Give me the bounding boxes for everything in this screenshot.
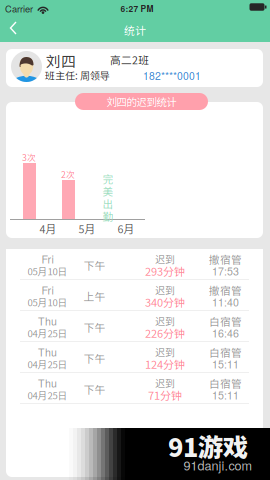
staticText: 6:27 PM bbox=[120, 2, 153, 14]
staticText: 15:11 bbox=[212, 387, 239, 403]
button[interactable]: Thu bbox=[6, 311, 263, 341]
button[interactable]: Thu bbox=[6, 373, 263, 403]
staticText: 统计 bbox=[124, 22, 146, 38]
staticText: 3次 bbox=[22, 151, 36, 163]
staticText: 迟到 bbox=[155, 283, 175, 297]
staticText: 04月25日 bbox=[27, 357, 67, 371]
staticText: 下午 bbox=[83, 319, 105, 335]
staticText: 白宿管 bbox=[209, 344, 242, 360]
staticText: 91游戏 bbox=[168, 428, 248, 464]
staticText: 05月10日 bbox=[27, 264, 67, 278]
staticText: 124分钟 bbox=[145, 356, 185, 372]
staticText: 05月10日 bbox=[27, 295, 67, 309]
staticText: Thu bbox=[38, 313, 57, 329]
button[interactable]: Thu bbox=[6, 342, 263, 372]
staticText: 下午 bbox=[83, 381, 105, 397]
staticText: 04月25日 bbox=[27, 326, 67, 340]
staticText: Carrier bbox=[5, 2, 33, 15]
staticText: Thu bbox=[38, 375, 57, 391]
staticText: 16:46 bbox=[212, 325, 239, 341]
staticText: 撤宿管 bbox=[209, 282, 242, 298]
staticText: 2次 bbox=[61, 168, 75, 180]
staticText: 下午 bbox=[83, 257, 105, 273]
staticText: 下午 bbox=[83, 350, 105, 366]
staticText: 71分钟 bbox=[148, 387, 182, 403]
staticText: 完 bbox=[102, 171, 113, 186]
staticText: 迟到 bbox=[155, 345, 175, 359]
staticText: Thu bbox=[38, 344, 57, 360]
staticText: 226分钟 bbox=[145, 325, 185, 341]
button[interactable]: Fri bbox=[6, 249, 263, 279]
button[interactable]: Fri bbox=[6, 280, 263, 310]
staticText: 17:53 bbox=[212, 263, 239, 279]
staticText: 班主任: 周领导 bbox=[45, 68, 110, 82]
staticText: 迟到 bbox=[155, 376, 175, 390]
staticText: 白宿管 bbox=[209, 375, 242, 391]
staticText: 刘四的迟到统计 bbox=[106, 94, 176, 109]
staticText: 出 bbox=[102, 196, 113, 211]
staticText: 上午 bbox=[83, 288, 105, 304]
staticText: 撤宿管 bbox=[209, 251, 242, 267]
staticText: 293分钟 bbox=[145, 263, 185, 279]
staticText: 04月25日 bbox=[27, 388, 67, 402]
staticText: 91danji.com bbox=[183, 456, 252, 474]
staticText: Fri bbox=[41, 251, 53, 267]
staticText: 15:11 bbox=[212, 356, 239, 372]
staticText: 4月 bbox=[39, 221, 56, 236]
staticText: 刘四 bbox=[46, 50, 76, 71]
staticText: 勤 bbox=[102, 208, 113, 224]
staticText: 美 bbox=[102, 183, 113, 199]
staticText: 11:40 bbox=[212, 294, 239, 310]
staticText: 白宿管 bbox=[209, 313, 242, 329]
staticText: 340分钟 bbox=[145, 294, 185, 310]
staticText: 高二2班 bbox=[110, 52, 149, 67]
staticText: 6月 bbox=[117, 221, 134, 236]
staticText: 182****0001 bbox=[143, 68, 201, 83]
staticText: 迟到 bbox=[155, 314, 175, 328]
staticText: 迟到 bbox=[155, 252, 175, 266]
staticText: Fri bbox=[41, 282, 53, 298]
staticText: 5月 bbox=[78, 221, 95, 236]
button[interactable]: Back bbox=[1, 15, 27, 41]
